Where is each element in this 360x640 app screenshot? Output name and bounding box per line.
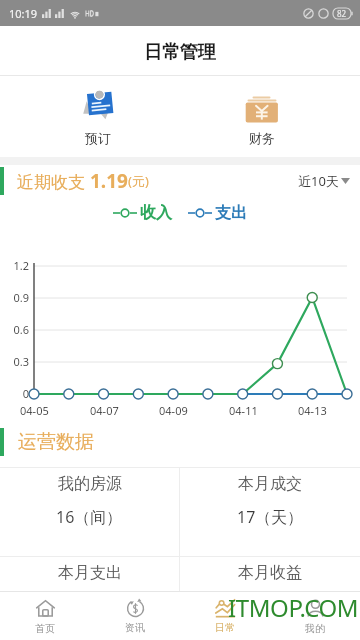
button[interactable]: Profile (270, 592, 360, 640)
staticText: 0.6 (13, 322, 29, 337)
button[interactable]: Daily (180, 592, 270, 640)
button[interactable]: 本月支出 (0, 557, 179, 640)
button[interactable]: 财务 (180, 76, 344, 157)
button[interactable]: 我的房源 (0, 468, 179, 556)
staticText: 日常 (215, 621, 235, 634)
staticText: 资讯 (125, 621, 145, 634)
staticText: 我的房源 (58, 474, 122, 494)
staticText: 04-09 (159, 403, 188, 418)
staticText: 本月收益 (238, 563, 302, 583)
staticText: 日常管理 (144, 41, 216, 64)
staticText: 17（天） (237, 506, 304, 528)
button[interactable]: 预订 (16, 76, 180, 157)
staticText: 1.19 (90, 168, 128, 194)
staticText: 82 (337, 8, 347, 19)
staticText: 我的 (305, 622, 325, 635)
staticText: 财务 (249, 130, 275, 146)
button[interactable]: News (90, 592, 180, 640)
staticText: 16（间） (56, 506, 123, 528)
staticText: (元) (128, 172, 149, 190)
staticText: 0 (22, 386, 29, 401)
button[interactable]: 收入 (113, 203, 172, 223)
staticText: 本月成交 (238, 474, 302, 494)
button[interactable]: 近10天 (298, 172, 360, 190)
staticText: 首页 (35, 622, 55, 635)
staticText: 0.3 (13, 354, 29, 369)
staticText: 预订 (85, 130, 111, 146)
staticText: 04-05 (20, 403, 49, 418)
staticText: ITMOP.COM (228, 591, 359, 624)
button[interactable]: Home (0, 592, 90, 640)
staticText: 1.2 (13, 258, 29, 273)
staticText: 04-07 (90, 403, 119, 418)
staticText: 近10天 (298, 172, 339, 190)
staticText: 收入 (140, 203, 172, 223)
staticText: 10:19 (9, 6, 38, 21)
staticText: 0.9 (13, 290, 29, 305)
staticText: 近期收支 (17, 170, 90, 193)
staticText: 运营数据 (18, 430, 94, 454)
button[interactable]: 本月成交 (180, 468, 360, 556)
staticText: 支出 (215, 203, 247, 223)
button[interactable]: 支出 (188, 203, 247, 223)
staticText: 本月支出 (58, 563, 122, 583)
button[interactable]: 本月收益 (180, 557, 360, 640)
staticText: 04-13 (298, 403, 327, 418)
staticText: 04-11 (229, 403, 258, 418)
